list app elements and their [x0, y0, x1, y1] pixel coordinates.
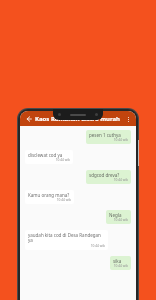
staticText: 10:44 wib: [28, 198, 71, 202]
staticText: 10:44 wib: [113, 264, 128, 268]
button[interactable]: Negla: [106, 210, 131, 224]
staticText: Kaos Rumahan distro murah: [35, 115, 123, 123]
button[interactable]: Back: [23, 113, 34, 124]
staticText: Kamu orang mana?: [28, 192, 70, 198]
staticText: yaudah kita cod di Desa Randegan ya: [28, 232, 105, 244]
staticText: pesen 1 cuthya: [89, 132, 121, 138]
staticText: 10:44 wib: [89, 138, 128, 142]
button[interactable]: sika: [110, 256, 131, 270]
staticText: 10:44 wib: [28, 244, 105, 248]
staticText: disclewat cod ya: [28, 152, 63, 158]
staticText: sika: [113, 258, 122, 264]
button[interactable]: More options: [123, 114, 133, 124]
button[interactable]: disclewat cod ya: [25, 150, 73, 164]
staticText: Negla: [109, 212, 122, 218]
staticText: 10:44 wib: [28, 158, 70, 162]
staticText: 10:44 wib: [109, 218, 128, 222]
staticText: 10:44 wib: [89, 178, 128, 182]
staticText: sdgcod dreva?: [89, 172, 120, 178]
button[interactable]: Kamu orang mana?: [25, 190, 74, 204]
button[interactable]: pesen 1 cuthya: [86, 130, 131, 144]
button[interactable]: yaudah kita cod di Desa Randegan ya: [25, 230, 108, 250]
button[interactable]: sdgcod dreva?: [86, 170, 131, 184]
